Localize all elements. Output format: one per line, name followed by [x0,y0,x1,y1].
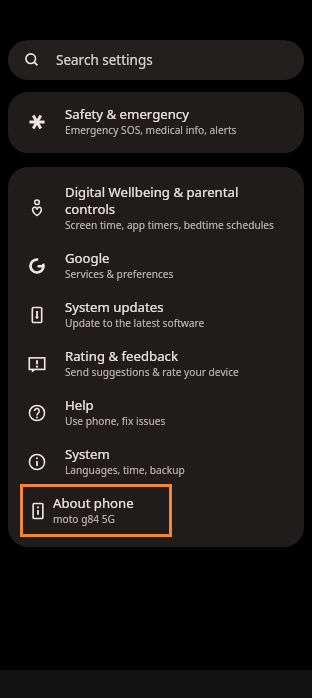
button[interactable]: Help [8,388,304,437]
staticText: System updates [65,299,164,316]
button[interactable]: System [8,437,304,484]
staticText: System [65,446,110,463]
staticText: Digital Wellbeing & parental controls [65,184,290,218]
staticText: Update to the latest software [65,317,205,330]
staticText: Safety & emergency [65,106,189,123]
staticText: Search settings [56,52,153,68]
staticText: Services & preferences [65,268,174,281]
other: Safety and emergency [28,113,46,131]
button[interactable]: Digital Wellbeing [8,175,304,241]
button[interactable]: Rating and feedback [8,339,304,388]
button[interactable]: About phone [20,484,172,537]
other: System updates [28,306,46,324]
staticText: Rating & feedback [65,348,178,365]
other: Help [28,404,46,422]
button[interactable]: System updates [8,290,304,339]
button[interactable]: Google [8,241,304,290]
staticText: Emergency SOS, medical info, alerts [65,124,237,137]
other: Google [28,257,46,275]
other: System [28,453,46,471]
other: Digital Wellbeing [28,199,46,217]
staticText: Use phone, fix issues [65,415,166,428]
other: Rating and feedback [28,355,46,373]
staticText: Google [65,250,110,267]
staticText: Screen time, app timers, bedtime schedul… [65,219,274,232]
staticText: Help [65,397,94,414]
button[interactable]: Safety and emergency [8,92,304,153]
other: About phone [29,502,47,520]
button[interactable]: Search settings [8,40,304,80]
staticText: moto g84 5G [53,513,115,526]
staticText: Languages, time, backup [65,464,185,477]
staticText: Send suggestions & rate your device [65,366,239,379]
staticText: About phone [53,495,134,512]
